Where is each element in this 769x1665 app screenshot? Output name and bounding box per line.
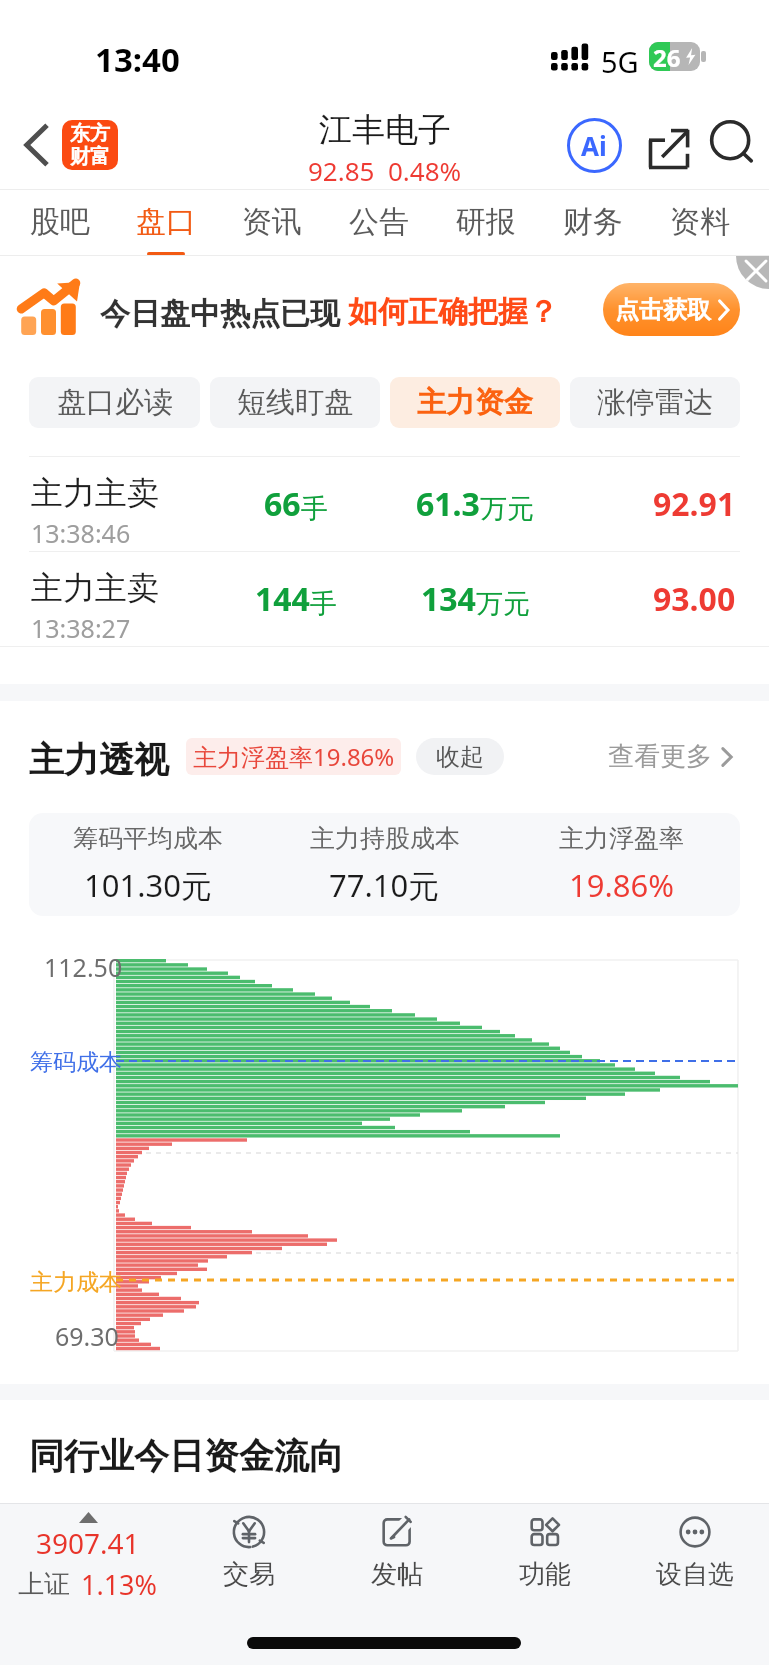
button[interactable]: 查看更多 [608,738,733,775]
button[interactable]: 交易 [189,1503,309,1613]
button[interactable]: 盘口必读 [29,377,200,428]
staticText: 69.30 [55,1319,119,1353]
staticText: 筹码成本 [30,1048,122,1077]
staticText: 万元 [476,587,530,621]
button[interactable]: 主力浮盈率 [503,823,740,906]
staticText: 手 [310,587,337,621]
button[interactable]: AI assistant [564,115,624,175]
button[interactable]: 财务 [539,190,646,256]
button[interactable]: 盘口 [113,190,219,256]
staticText: 财务 [563,203,623,241]
staticText: 13:40 [95,37,180,82]
staticText: 主力浮盈率19.86% [193,740,395,773]
staticText: 1.13% [81,1566,158,1603]
staticText: 东方 财富 [70,121,110,169]
staticText: 交易 [223,1558,275,1591]
staticText: 主力浮盈率 [559,823,684,854]
button[interactable]: 主力资金 [390,377,560,428]
staticText: 股吧 [30,203,90,241]
staticText: 101.30元 [84,864,212,906]
staticText: 研报 [456,203,516,241]
staticText: 盘口 [136,203,196,241]
staticText: 公告 [349,203,409,241]
button[interactable]: Share [640,120,698,178]
staticText: 主力主卖 [31,473,159,513]
staticText: 手 [301,492,328,526]
staticText: 发帖 [371,1558,423,1591]
staticText: 主力成本 [30,1268,122,1297]
staticText: 13:38:27 [31,611,131,645]
button[interactable]: 资料 [646,190,753,256]
button[interactable]: 3907.41 [8,1503,168,1665]
staticText: 筹码平均成本 [73,823,223,854]
staticText: 万元 [480,492,534,526]
staticText: 查看更多 [608,740,712,773]
button[interactable]: 主力主卖 [0,456,769,551]
staticText: 61.3 [416,482,480,526]
staticText: 19.86% [569,864,674,906]
button[interactable]: 股吧 [7,190,113,256]
staticText: 上证 [18,1568,70,1601]
staticText: 66 [264,482,301,526]
button[interactable]: Close banner [736,256,769,289]
button[interactable]: 主力主卖 [0,551,769,646]
staticText: 77.10元 [329,864,440,906]
staticText: 5G [601,42,639,81]
button[interactable]: 点击获取 [603,283,740,336]
button[interactable]: 收起 [416,738,504,775]
staticText: 134 [421,577,476,621]
staticText: 涨停雷达 [597,384,713,421]
button[interactable]: 东方财富 [62,120,118,170]
staticText: 如何正确把握？ [348,293,558,331]
staticText: 93.00 [653,577,736,621]
staticText: 112.50 [44,950,123,984]
button[interactable]: Back [10,119,62,171]
staticText: 主力主卖 [31,568,159,608]
button[interactable]: 发帖 [337,1503,457,1613]
staticText: 盘口必读 [57,384,173,421]
button[interactable]: 主力持股成本 [266,823,503,906]
staticText: 主力资金 [417,384,533,421]
button[interactable]: 今日盘中热点已现 [0,256,769,368]
button[interactable]: 筹码平均成本 [29,823,266,906]
staticText: 资料 [670,203,730,241]
button[interactable]: Search [704,115,764,175]
button[interactable]: 涨停雷达 [570,377,740,428]
button[interactable]: 研报 [432,190,539,256]
staticText: 江丰电子 [319,109,451,151]
staticText: 今日盘中热点已现 [100,292,348,333]
staticText: 短线盯盘 [237,384,353,421]
button[interactable]: 功能 [485,1503,605,1613]
staticText: 同行业今日资金流向 [29,1434,344,1478]
staticText: 主力持股成本 [310,823,460,854]
staticText: 设自选 [656,1558,734,1591]
button[interactable]: 公告 [325,190,432,256]
staticText: 资讯 [242,203,302,241]
button[interactable]: 短线盯盘 [210,377,380,428]
staticText: 144 [255,577,310,621]
button[interactable]: 设自选 [635,1503,755,1613]
staticText: 92.85 0.48% [308,153,462,188]
staticText: 3907.41 [36,1524,140,1562]
staticText: 13:38:46 [31,516,131,550]
staticText: 收起 [436,742,484,772]
staticText: Ai [581,128,607,163]
staticText: 26 [653,42,681,70]
staticText: 主力透视 [29,738,169,782]
staticText: 92.91 [653,482,736,526]
button[interactable]: 主力浮盈率19.86% [186,738,401,775]
staticText: 功能 [519,1558,571,1591]
staticText: 点击获取 [615,295,711,325]
button[interactable]: 资讯 [219,190,325,256]
